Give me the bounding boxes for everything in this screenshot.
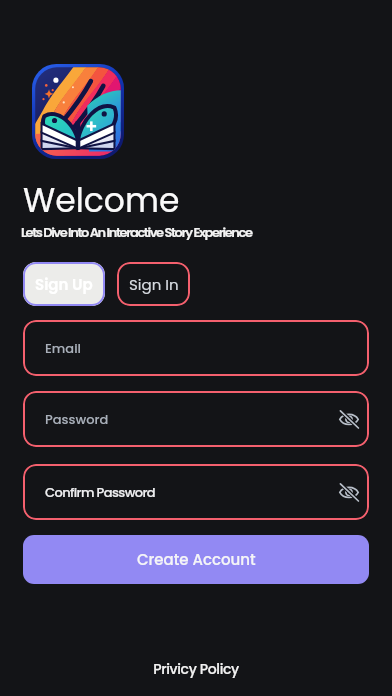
staticText: Privicy Policy	[153, 659, 239, 679]
button[interactable]: Create Account	[23, 535, 369, 584]
staticText: Password	[45, 410, 109, 428]
button[interactable]: Password	[23, 391, 369, 447]
staticText: Welcome	[23, 177, 180, 223]
button[interactable]: Sign Up	[23, 262, 105, 306]
staticText: Sign In	[129, 274, 179, 295]
button[interactable]: Confirm Password	[23, 464, 369, 520]
staticText: Confirm Password	[45, 483, 156, 501]
staticText: Sign Up	[35, 274, 93, 295]
button[interactable]: Sign In	[117, 262, 190, 306]
staticText: Lets Dive Into An Interactive Story Expe…	[21, 223, 252, 241]
button[interactable]: Toggle password visibility	[337, 480, 361, 504]
button[interactable]: Email	[23, 320, 369, 376]
staticText: Email	[45, 339, 81, 357]
staticText: Create Account	[137, 549, 256, 570]
button[interactable]: Privicy Policy	[0, 659, 392, 679]
button[interactable]: Toggle password visibility	[337, 407, 361, 431]
